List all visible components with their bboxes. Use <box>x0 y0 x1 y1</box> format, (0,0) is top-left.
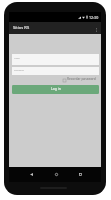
staticText: Sitios RS <box>13 25 30 31</box>
staticText: Login <box>14 57 20 60</box>
button[interactable]: Log in <box>12 85 99 94</box>
button[interactable]: Back <box>26 168 36 181</box>
button[interactable]: Recordar password <box>12 77 99 83</box>
staticText: Log in <box>51 86 61 91</box>
staticText: Recordar password <box>67 77 96 81</box>
staticText: Password <box>14 69 24 72</box>
button[interactable]: Recents <box>75 168 85 181</box>
button[interactable]: More options <box>92 24 101 35</box>
button[interactable]: Password <box>12 67 99 75</box>
button[interactable]: Home <box>51 168 61 181</box>
staticText: 12:30 <box>89 15 99 20</box>
